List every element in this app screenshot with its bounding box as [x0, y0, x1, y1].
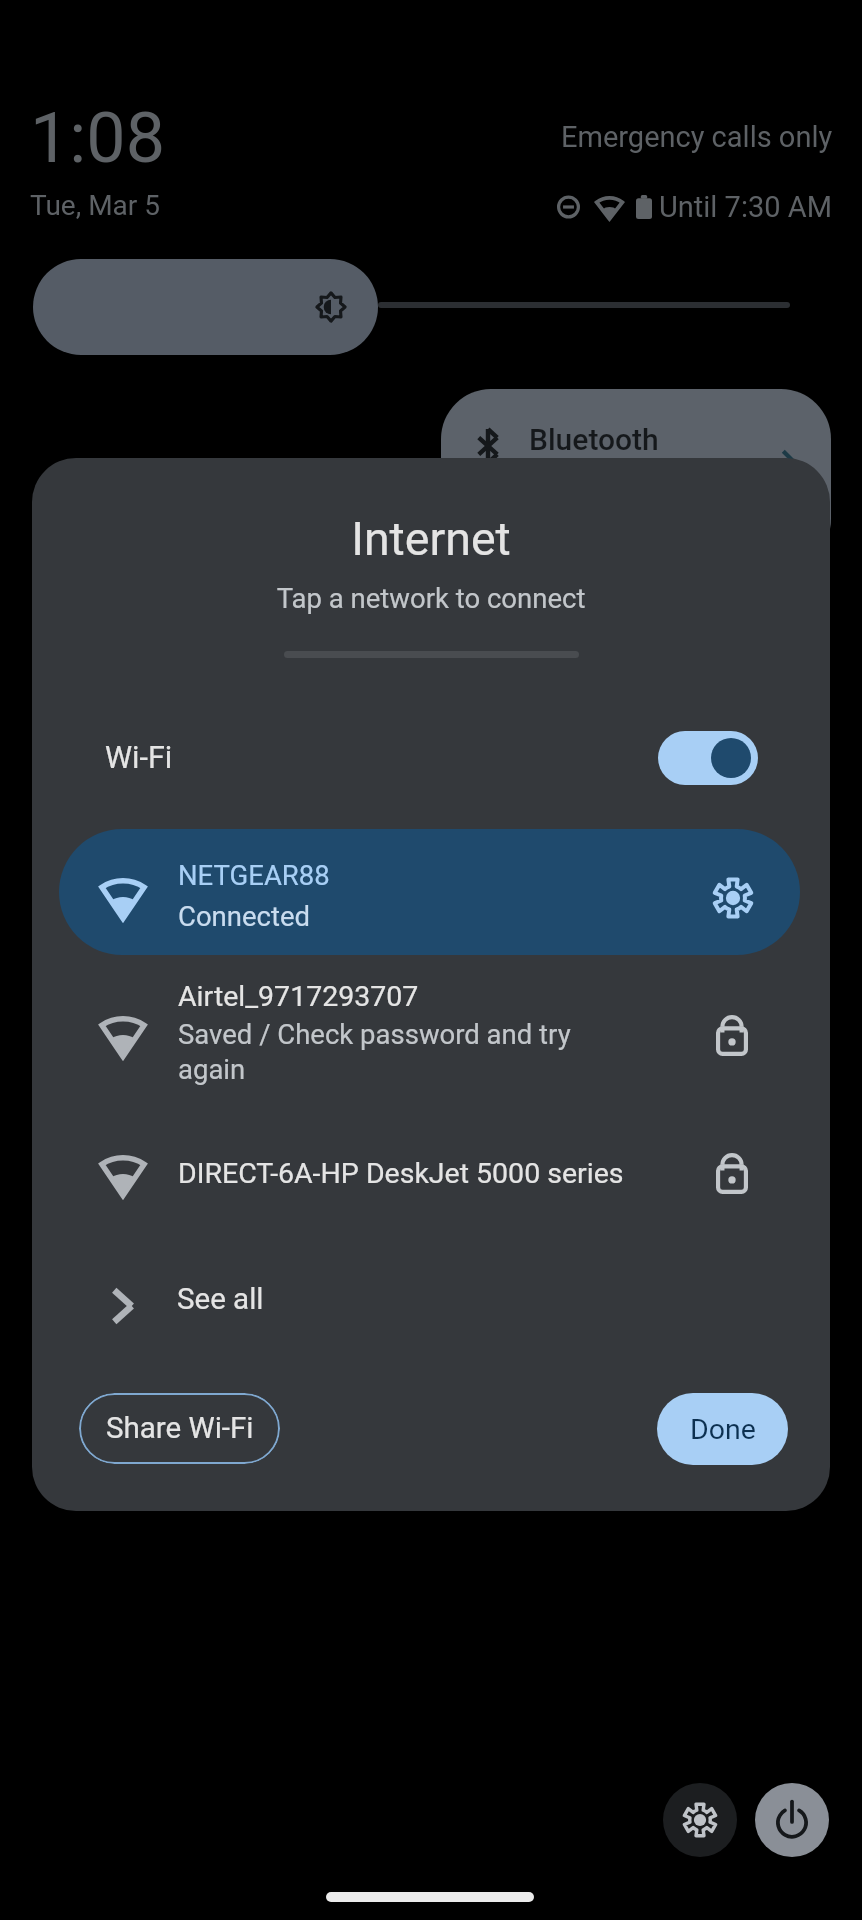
button[interactable]: Wi-Fi	[32, 702, 830, 814]
button[interactable]: See all	[32, 1248, 830, 1358]
staticText: Airtel_9717293707	[178, 980, 419, 1013]
staticText: NETGEAR88	[178, 859, 330, 891]
staticText: Tue, Mar 5	[30, 189, 160, 222]
button[interactable]: Share Wi-Fi	[79, 1393, 280, 1464]
button[interactable]: NETGEAR88	[59, 829, 800, 955]
button[interactable]: Network details	[686, 835, 779, 955]
button[interactable]: Airtel_9717293707	[32, 963, 830, 1113]
staticText: DIRECT-6A-HP DeskJet 5000 series	[178, 1157, 624, 1190]
staticText: Bluetooth	[529, 422, 659, 457]
button[interactable]: Brightness	[33, 259, 378, 355]
button[interactable]: DIRECT-6A-HP DeskJet 5000 series	[32, 1113, 830, 1231]
button[interactable]: Done	[657, 1393, 788, 1465]
staticText: Wi-Fi	[105, 740, 173, 776]
staticText: See all	[177, 1282, 264, 1317]
staticText: Tap a network to connect	[32, 582, 830, 614]
button[interactable]: Power	[755, 1783, 829, 1857]
staticText: Connected	[178, 900, 311, 932]
staticText: Emergency calls only	[561, 120, 833, 154]
button[interactable]: Bluetooth	[441, 389, 831, 569]
staticText: 1:08	[30, 97, 165, 179]
staticText: Internet	[32, 512, 830, 566]
staticText: Saved / Check password and try again	[178, 1018, 571, 1085]
button[interactable]: Settings	[663, 1783, 737, 1857]
staticText: Done	[690, 1413, 756, 1446]
staticText: Until 7:30 AM	[659, 190, 832, 224]
staticText: Share Wi-Fi	[106, 1411, 254, 1446]
